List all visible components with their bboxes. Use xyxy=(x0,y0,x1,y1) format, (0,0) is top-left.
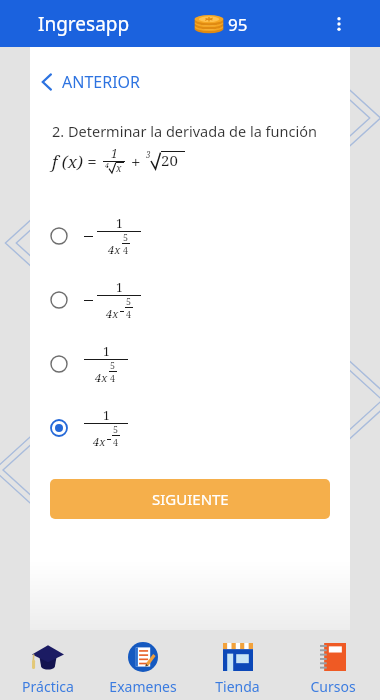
staticText: Práctica xyxy=(22,677,74,696)
staticText: Tienda xyxy=(215,677,260,696)
staticText: 3 xyxy=(146,149,151,160)
button[interactable]: More options xyxy=(326,11,352,37)
staticText: 4x xyxy=(106,306,119,321)
staticText: 5 xyxy=(113,423,119,435)
staticText: 4 xyxy=(110,372,116,384)
staticText: 4 xyxy=(123,244,129,256)
staticText: ANTERIOR xyxy=(62,71,141,93)
staticText: 5 xyxy=(123,231,129,243)
button[interactable]: 1 xyxy=(30,277,350,323)
staticText: 4x xyxy=(93,434,106,449)
button[interactable]: Tienda xyxy=(190,630,285,700)
staticText: 1 xyxy=(116,215,123,231)
staticText: 4x xyxy=(95,370,108,385)
button[interactable]: 1 xyxy=(30,341,350,387)
staticText: 1 xyxy=(116,279,123,295)
staticText: 1 xyxy=(103,343,110,359)
staticText: 4 xyxy=(126,308,132,320)
button[interactable]: SIGUIENTE xyxy=(50,479,330,519)
staticText: 4x xyxy=(108,242,121,257)
staticText: 5 xyxy=(110,359,116,371)
staticText: 20 xyxy=(161,150,178,170)
staticText: SIGUIENTE xyxy=(152,489,229,509)
staticText: 4 xyxy=(113,436,119,448)
staticText: f (x) = xyxy=(52,150,97,173)
staticText: 4 xyxy=(105,161,109,171)
button[interactable]: 1 xyxy=(30,405,350,451)
button[interactable]: 1 xyxy=(30,213,350,259)
staticText: 1 xyxy=(103,407,110,423)
staticText: 1 xyxy=(111,145,118,161)
staticText: Examenes xyxy=(109,677,177,696)
button[interactable]: Coins 95 xyxy=(188,8,252,40)
button[interactable]: Práctica xyxy=(0,630,95,700)
button[interactable]: Cursos xyxy=(285,630,380,700)
staticText: + xyxy=(131,150,141,173)
staticText: 5 xyxy=(126,295,132,307)
staticText: 2. Determinar la derivada de la función xyxy=(52,121,317,141)
staticText: Ingresapp xyxy=(38,11,130,37)
button[interactable]: Examenes xyxy=(95,630,190,700)
button[interactable]: ANTERIOR xyxy=(30,65,153,99)
staticText: x xyxy=(116,161,122,175)
staticText: 95 xyxy=(228,13,248,36)
staticText: Cursos xyxy=(310,677,356,696)
